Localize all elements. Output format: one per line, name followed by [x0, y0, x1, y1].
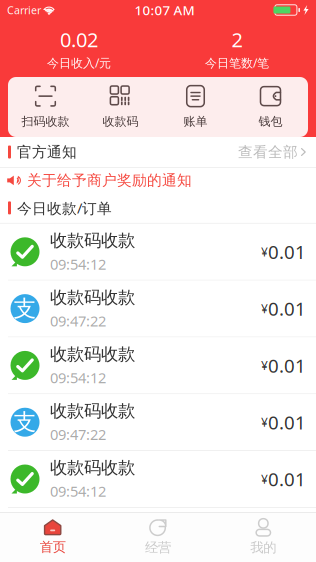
button[interactable]: 首页 [0, 514, 105, 561]
staticText: 收款码收款 [50, 287, 135, 308]
staticText: 收款码收款 [50, 400, 135, 422]
button[interactable]: 关于给予商户奖励的通知 [0, 168, 316, 193]
staticText: 收款码收款 [50, 230, 135, 251]
staticText: 0.01 [268, 239, 306, 264]
staticText: 收款码收款 [50, 457, 135, 478]
button[interactable]: 扫码收款 [8, 76, 83, 138]
staticText: ¥ [261, 301, 268, 316]
button[interactable]: 收款码 [83, 76, 158, 138]
staticText: 支 [13, 408, 36, 436]
staticText: 09:54:12 [50, 368, 106, 387]
staticText: 钱包 [258, 114, 282, 129]
staticText: ¥ [261, 414, 268, 430]
staticText: 2 [231, 26, 242, 53]
staticText: 官方通知 [17, 143, 77, 161]
staticText: 今日收款/订单 [17, 198, 112, 218]
staticText: ¥ [261, 357, 268, 373]
button[interactable]: 收款码收款 [0, 451, 316, 508]
staticText: 账单 [183, 114, 207, 129]
staticText: 10:07 AM [134, 1, 194, 19]
button[interactable]: 我的 [211, 513, 316, 562]
staticText: 0.01 [268, 467, 306, 491]
staticText: ¥ [261, 244, 268, 260]
button[interactable]: 支 [0, 281, 316, 337]
button[interactable]: 经营 [105, 513, 211, 562]
staticText: 经营 [145, 539, 171, 556]
button[interactable]: 收款码收款 [0, 224, 316, 281]
staticText: 09:47:22 [50, 425, 106, 444]
staticText: 今日收入/元 [47, 55, 111, 71]
staticText: 0.01 [268, 296, 306, 321]
staticText: 我的 [250, 539, 276, 556]
staticText: 09:54:12 [50, 254, 106, 274]
staticText: 首页 [40, 539, 66, 555]
staticText: 支 [13, 295, 36, 322]
staticText: 09:47:22 [50, 311, 106, 330]
staticText: 09:54:12 [50, 481, 106, 501]
staticText: ¥ [261, 471, 268, 487]
button[interactable]: 收款码收款 [0, 337, 316, 394]
staticText: 0.01 [268, 410, 306, 435]
button[interactable]: 支 [0, 394, 316, 451]
button[interactable]: 账单 [158, 76, 233, 138]
staticText: 收款码 [102, 114, 138, 129]
button[interactable]: 钱包 [233, 76, 308, 138]
staticText: Carrier [7, 3, 41, 17]
staticText: 今日笔数/笔 [205, 55, 269, 71]
button[interactable]: 查看全部 [228, 137, 306, 167]
staticText: 0.01 [268, 353, 306, 378]
staticText: 扫码收款 [21, 114, 69, 129]
staticText: 0.02 [60, 26, 98, 53]
staticText: 收款码收款 [50, 343, 135, 365]
staticText: 关于给予商户奖励的通知 [27, 171, 192, 189]
staticText: 查看全部 [238, 143, 298, 161]
